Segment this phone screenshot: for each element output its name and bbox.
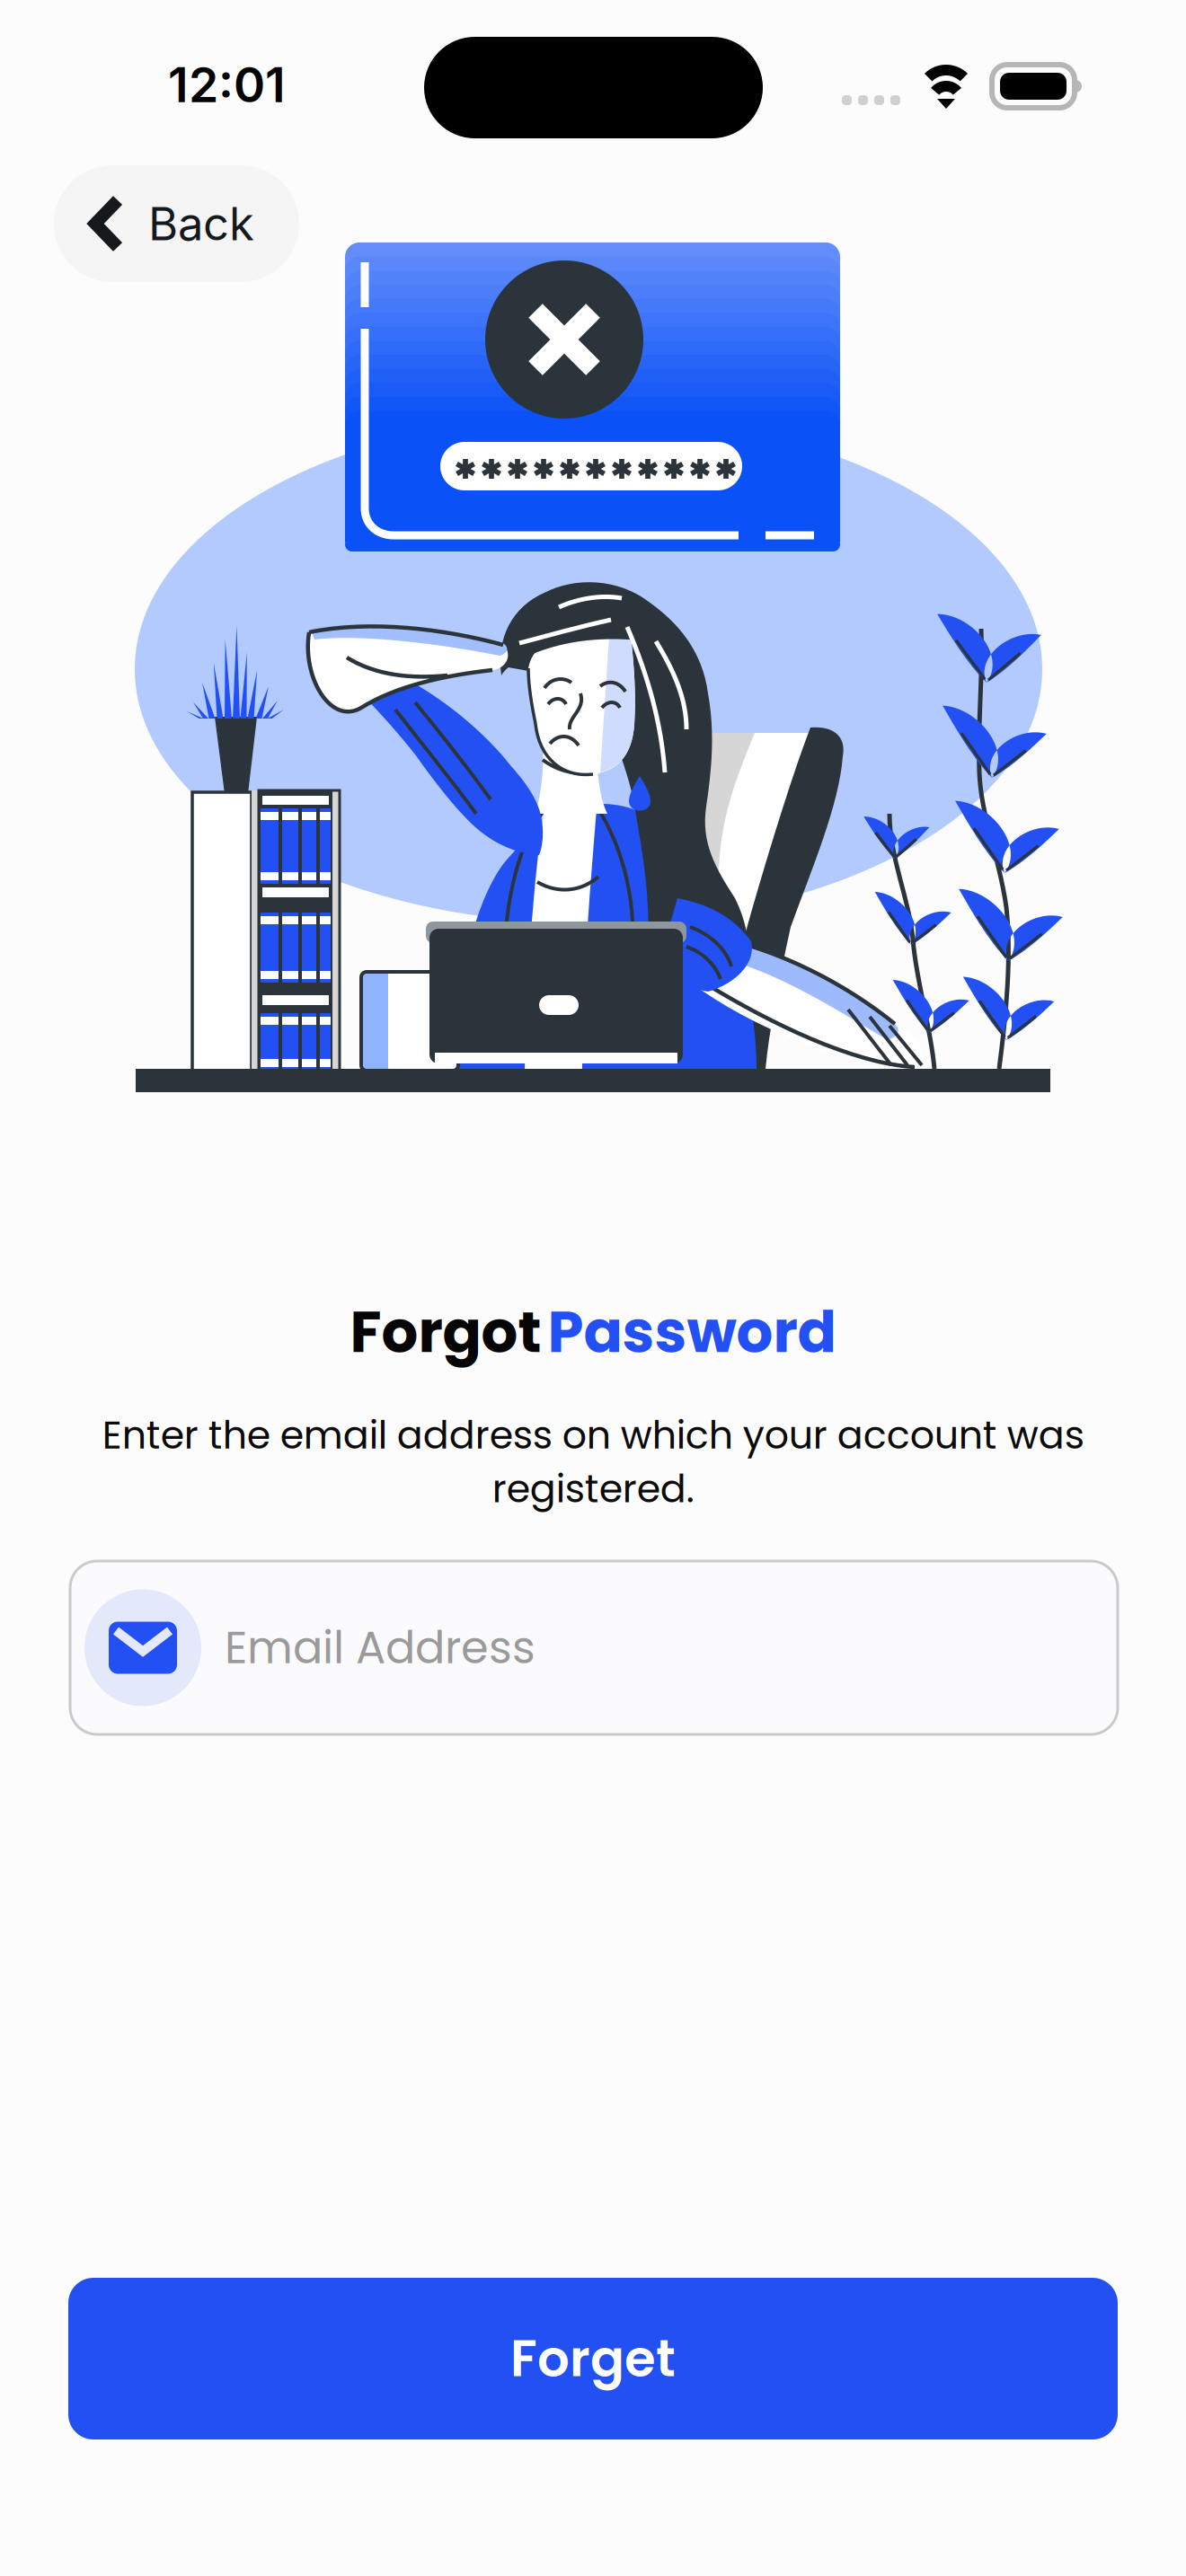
button[interactable]: Forget (68, 2278, 1118, 2439)
staticText: Password (548, 1292, 836, 1372)
staticText: Back (148, 196, 254, 251)
staticText: Forget (510, 2323, 676, 2394)
button[interactable]: Back (54, 165, 299, 282)
staticText: Forgot (350, 1292, 541, 1372)
staticText: Email Address (225, 1617, 535, 1679)
staticText: Enter the email address on which your ac… (102, 1408, 1084, 1516)
staticText: 12:01 (168, 56, 286, 114)
